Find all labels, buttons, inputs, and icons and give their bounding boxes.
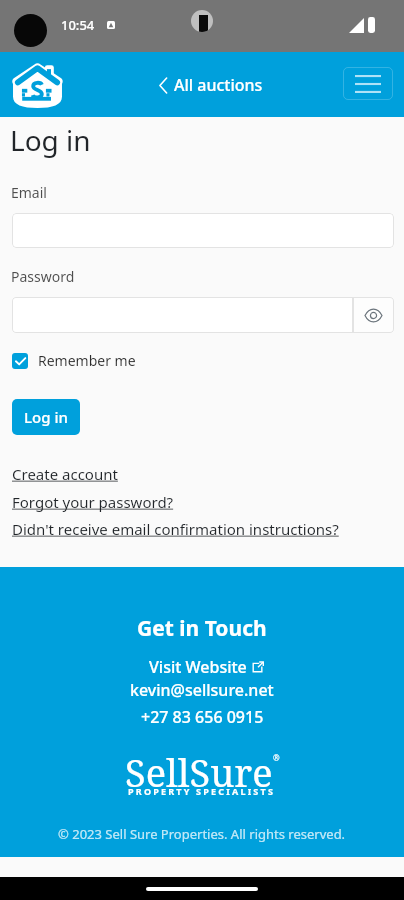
staticText: Get in Touch [137, 614, 267, 643]
staticText: Visit Website [149, 656, 247, 678]
staticText: All auctions [174, 74, 263, 96]
button[interactable]: All auctions [155, 68, 267, 102]
staticText: SellSure [125, 746, 273, 798]
button[interactable]: Didn't receive email confirmation instru… [12, 519, 339, 539]
other: SellSure logo [12, 62, 63, 108]
staticText: Didn't receive email confirmation instru… [12, 519, 339, 539]
staticText: © 2023 Sell Sure Properties. All rights … [58, 825, 346, 843]
staticText: +27 83 656 0915 [141, 706, 264, 728]
staticText: kevin@sellsure.net [130, 679, 274, 701]
button[interactable]: SellSure [125, 746, 280, 798]
button[interactable]: Log in [12, 399, 80, 435]
staticText: Create account [12, 464, 118, 484]
button[interactable]: Create account [12, 464, 118, 484]
button[interactable]: Email field [12, 213, 394, 248]
staticText: 10:54 [61, 16, 95, 34]
staticText: PROPERTY SPECIALISTS [128, 785, 276, 797]
staticText: Password [11, 267, 75, 286]
staticText: Log in [24, 407, 68, 427]
staticText: Email [11, 183, 47, 202]
staticText: Log in [10, 121, 91, 159]
button[interactable]: Password field [12, 297, 353, 333]
button[interactable]: Visit Website [149, 656, 264, 678]
staticText: Forgot your password? [12, 492, 174, 512]
button[interactable]: Open menu [343, 67, 393, 100]
button[interactable]: Forgot your password? [12, 492, 174, 512]
staticText: Remember me [38, 351, 136, 370]
button[interactable]: Show password [353, 297, 394, 333]
other: Opens in new window [252, 661, 264, 673]
staticText: ® [273, 752, 280, 763]
button[interactable]: Remember me [12, 351, 140, 370]
